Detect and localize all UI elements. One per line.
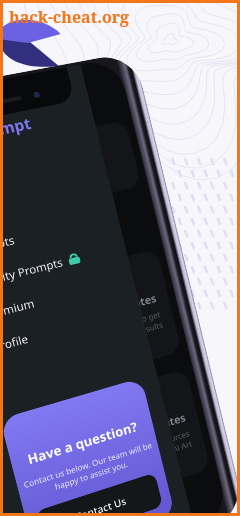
staticText: Have a question? [26, 417, 139, 468]
button[interactable]: Writing Templates [0, 249, 182, 409]
staticText: Contact us below. Our team will be happy… [22, 439, 156, 501]
staticText: Image Templates [93, 410, 187, 452]
button[interactable]: Premium [0, 273, 119, 323]
staticText: AiPrompt [0, 112, 33, 148]
button[interactable]: Prompts [0, 211, 104, 258]
button[interactable]: Image Templates [0, 368, 211, 516]
button[interactable]: Contact Us [35, 472, 163, 516]
button[interactable]: Profile [0, 304, 127, 355]
staticText: Contact Us [73, 494, 127, 516]
staticText: Prompts [0, 232, 16, 258]
button[interactable]: Quality Prompts [0, 242, 112, 290]
button[interactable]: Have a question? [0, 377, 175, 516]
staticText: Profile [0, 330, 30, 355]
staticText: Quality Prompts [0, 254, 64, 290]
staticText: Writing Templates [56, 290, 158, 331]
staticText: hack-cheat.org [9, 6, 130, 28]
staticText: Use ready templates to get fast results [60, 308, 164, 357]
staticText: Explore curated resources to create Ai A… [95, 427, 193, 478]
staticText: Premium [0, 295, 36, 323]
button[interactable] [0, 120, 142, 233]
